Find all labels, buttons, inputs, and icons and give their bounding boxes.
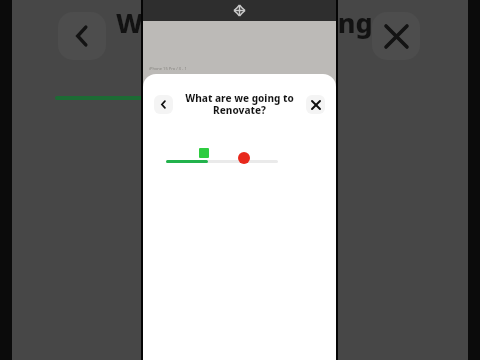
- staticText: What are we going to Renovate?: [177, 91, 302, 117]
- button[interactable]: Close: [372, 12, 420, 60]
- button[interactable]: Back: [58, 12, 106, 60]
- button[interactable]: Back: [154, 95, 173, 114]
- button[interactable]: Close: [306, 95, 325, 114]
- staticText: iPhone 15 Pro / X - 1: [149, 66, 187, 71]
- button[interactable]: Current step: [238, 152, 250, 164]
- button[interactable]: Completed step: [199, 148, 209, 158]
- staticText: What are we going to: [116, 4, 409, 41]
